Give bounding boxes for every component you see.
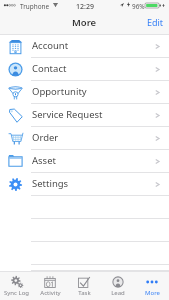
staticText: Contact (32, 62, 67, 75)
staticText: Asset (32, 154, 56, 167)
staticText: More (145, 289, 160, 297)
button[interactable]: Settings (0, 173, 169, 196)
staticText: Activity (40, 289, 61, 297)
button[interactable]: Opportunity (0, 81, 169, 104)
staticText: Sync Log (4, 289, 29, 297)
staticText: 12:29 (76, 2, 94, 12)
staticText: 96% (132, 2, 145, 11)
staticText: Opportunity (32, 85, 87, 98)
button[interactable]: Lead (101, 272, 135, 300)
staticText: Truphone (20, 2, 50, 11)
button[interactable]: Order (0, 127, 169, 150)
button[interactable]: Contact (0, 58, 169, 81)
staticText: More (72, 16, 97, 29)
button[interactable]: Account (0, 35, 169, 58)
staticText: Order (32, 131, 59, 144)
button[interactable]: Sync Log (0, 272, 33, 300)
button[interactable]: Asset (0, 150, 169, 173)
button[interactable]: Task (67, 272, 101, 300)
button[interactable]: More (135, 272, 169, 300)
staticText: Account (32, 39, 69, 52)
button[interactable]: Activity (33, 272, 67, 300)
staticText: Task (78, 289, 91, 297)
staticText: Service Request (32, 108, 103, 121)
staticText: Edit (147, 16, 164, 28)
button[interactable]: Service Request (0, 104, 169, 127)
button[interactable]: Edit (139, 14, 169, 33)
staticText: Settings (32, 177, 69, 190)
staticText: Lead (111, 289, 125, 297)
